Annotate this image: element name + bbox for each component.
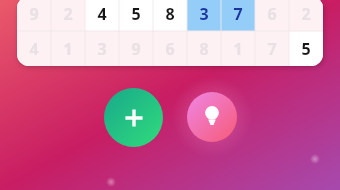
button[interactable]: 7 (255, 31, 289, 66)
staticText: 9 (131, 38, 141, 60)
button[interactable]: 1 (221, 31, 255, 66)
button[interactable]: 4 (17, 31, 51, 66)
button[interactable]: 5 (119, 0, 153, 31)
button[interactable]: 9 (119, 31, 153, 66)
button[interactable]: 1 (51, 31, 85, 66)
staticText: 5 (131, 3, 141, 25)
staticText: 4 (97, 3, 107, 25)
button[interactable]: 3 (85, 31, 119, 66)
staticText: 4 (29, 38, 39, 60)
staticText: 1 (233, 38, 243, 60)
button[interactable]: 7 (221, 0, 255, 31)
staticText: 2 (63, 3, 73, 25)
staticText: 7 (267, 38, 277, 60)
button[interactable]: 9 (17, 0, 51, 31)
button[interactable]: 2 (51, 0, 85, 31)
staticText: 3 (97, 38, 107, 60)
button[interactable]: 6 (255, 0, 289, 31)
button[interactable]: 2 (289, 0, 323, 31)
staticText: 9 (29, 3, 39, 25)
button[interactable]: 4 (85, 0, 119, 31)
staticText: 5 (301, 38, 311, 60)
staticText: 2 (301, 3, 311, 25)
button[interactable]: Add number (104, 88, 163, 147)
button[interactable]: 5 (289, 31, 323, 66)
staticText: 6 (165, 38, 175, 60)
staticText: 8 (199, 38, 209, 60)
button[interactable]: 6 (153, 31, 187, 66)
button[interactable]: 8 (187, 31, 221, 66)
staticText: 3 (199, 3, 209, 25)
staticText: 7 (233, 3, 243, 25)
staticText: 6 (267, 3, 277, 25)
button[interactable]: Hint (187, 92, 237, 142)
staticText: 8 (165, 3, 175, 25)
staticText: 1 (63, 38, 73, 60)
button[interactable]: 3 (187, 0, 221, 31)
button[interactable]: 8 (153, 0, 187, 31)
